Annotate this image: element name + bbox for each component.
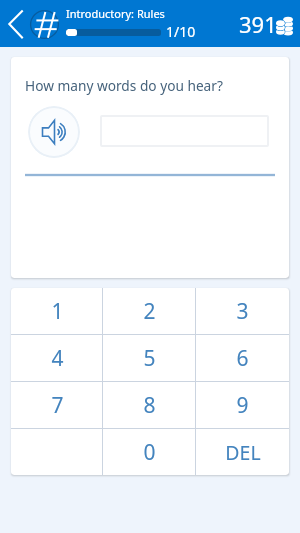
staticText: 8 xyxy=(143,391,156,420)
button[interactable]: 8 xyxy=(103,382,196,428)
button[interactable]: 9 xyxy=(196,382,289,428)
button[interactable]: Lesson info xyxy=(30,10,59,39)
staticText: 3 xyxy=(236,297,249,326)
staticText: 2 xyxy=(143,297,156,326)
staticText: 4 xyxy=(51,344,64,373)
staticText: 1 xyxy=(51,297,64,326)
button[interactable]: DEL xyxy=(196,429,289,475)
staticText: 9 xyxy=(236,391,249,420)
staticText: 1/10 xyxy=(166,22,196,41)
button[interactable]: 0 xyxy=(103,429,196,475)
staticText: 5 xyxy=(143,344,156,373)
button[interactable]: Back xyxy=(4,7,28,41)
button[interactable]: 3 xyxy=(196,288,289,334)
button[interactable]: 5 xyxy=(103,335,196,381)
staticText: 7 xyxy=(51,391,64,420)
button[interactable]: 4 xyxy=(11,335,103,381)
button[interactable]: 2 xyxy=(103,288,196,334)
staticText: How many words do you hear? xyxy=(25,76,223,95)
staticText: 6 xyxy=(236,344,249,373)
button[interactable]: 1 xyxy=(11,288,103,334)
staticText: DEL xyxy=(225,439,261,466)
button[interactable]: Answer input xyxy=(100,115,269,147)
button[interactable]: Coins xyxy=(240,0,300,47)
staticText: 0 xyxy=(143,438,156,467)
button[interactable]: 6 xyxy=(196,335,289,381)
staticText: 391 xyxy=(239,9,277,39)
staticText: Introductory: Rules xyxy=(66,6,165,21)
button[interactable]: Play audio xyxy=(28,106,80,158)
button[interactable]: 7 xyxy=(11,382,103,428)
